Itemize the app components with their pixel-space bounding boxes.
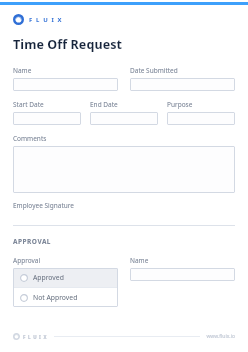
staticText: F L U I X [29,16,63,24]
button[interactable] [13,112,81,125]
button[interactable]: Not Approved [13,288,118,307]
button[interactable] [90,112,158,125]
staticText: F L U I X [23,334,48,340]
other: Fluix logo [13,333,20,340]
button[interactable] [130,268,235,281]
staticText: Purpose [167,100,193,109]
staticText: Time Off Request [13,36,123,53]
staticText: Comments [13,134,47,143]
staticText: End Date [90,100,118,109]
button[interactable] [167,112,235,125]
staticText: APPROVAL [13,237,52,246]
button[interactable] [130,78,235,91]
staticText: Not Approved [33,293,78,302]
button[interactable] [13,146,235,193]
staticText: Date Submitted [130,66,178,75]
staticText: Approval [13,256,41,265]
button[interactable]: Approved [13,268,118,287]
other: Fluix logo [13,14,24,25]
staticText: Employee Signature [13,201,74,210]
staticText: Name [130,256,149,265]
staticText: Approved [33,273,64,282]
staticText: Start Date [13,100,44,109]
staticText: www.fluix.io [206,333,235,340]
staticText: Name [13,66,32,75]
button[interactable] [13,78,118,91]
